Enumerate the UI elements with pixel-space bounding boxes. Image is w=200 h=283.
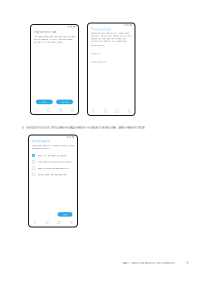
button[interactable]: Do not show any notifications [32, 173, 77, 176]
staticText: NOTIFICATIONS [32, 139, 50, 143]
button[interactable]: Navigation [54, 107, 66, 113]
staticText: Глава 7. Настройка экрана и отображения [122, 261, 174, 265]
button[interactable]: Cancel [36, 100, 53, 104]
staticText: Show all notification content [37, 154, 66, 157]
staticText: Register your face [34, 30, 56, 33]
staticText: 15 [186, 261, 188, 265]
staticText: Cancel [41, 100, 47, 103]
button[interactable]: Navigation [30, 107, 42, 113]
button[interactable]: Continue [56, 100, 73, 104]
button[interactable]: Hide sensitive notification content [32, 160, 77, 163]
button[interactable]: Navigation [53, 220, 65, 225]
button[interactable]: Navigation [87, 108, 99, 114]
button[interactable]: Show all notification content [32, 154, 77, 157]
button[interactable]: Navigation [65, 220, 77, 225]
button[interactable]: Navigation [28, 220, 41, 225]
button[interactable]: Navigation [42, 107, 54, 113]
staticText: Continue [61, 100, 69, 103]
button[interactable]: Navigation [123, 108, 135, 114]
staticText: When your device is locked, hide all you… [32, 144, 74, 149]
button[interactable]: Navigation [66, 107, 78, 113]
staticText: Touch Pattern [91, 44, 104, 46]
staticText: Do not show any notifications [37, 173, 66, 176]
staticText: Phone unlock [91, 28, 110, 31]
button[interactable]: Navigation [111, 108, 123, 114]
button[interactable]: Navigation [99, 108, 111, 114]
staticText: Save [63, 213, 67, 216]
staticText: Touch PIN [91, 52, 101, 55]
staticText: Выберите способ отображения уведомлений … [26, 126, 145, 129]
staticText: Unlocking your device will have some opt… [91, 31, 133, 42]
staticText: Touch Password [91, 60, 106, 63]
staticText: Hide sensitive notification content [37, 160, 71, 163]
button[interactable]: Touch to hide notifications on it [32, 167, 77, 170]
staticText: Touch to hide notifications on it [37, 167, 69, 169]
staticText: 4. [22, 126, 24, 129]
button[interactable]: Save [57, 212, 72, 217]
button[interactable]: Navigation [41, 220, 53, 225]
staticText: You registered your face and only be see… [34, 35, 75, 43]
